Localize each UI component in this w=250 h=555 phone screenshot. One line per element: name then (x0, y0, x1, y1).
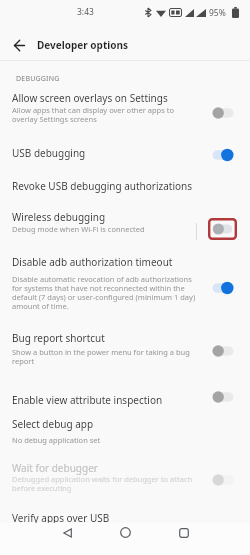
button[interactable] (0, 450, 250, 498)
button[interactable] (0, 136, 250, 170)
button[interactable] (6, 32, 32, 58)
staticText: USB debugging (12, 146, 86, 160)
button[interactable] (0, 500, 250, 523)
button[interactable] (0, 86, 250, 134)
staticText: 3:43 (77, 6, 94, 18)
staticText: DEBUGGING (16, 74, 60, 84)
staticText: Check apps installed via ADB/ADT for har… (12, 526, 173, 545)
button[interactable] (0, 201, 250, 248)
staticText: Allow apps that can display over other a… (12, 105, 174, 124)
button[interactable] (0, 410, 250, 448)
staticText: Disable adb authorization timeout (12, 255, 173, 269)
staticText: Debugged application waits for debugger … (12, 474, 193, 493)
staticText: No debug application set (12, 435, 101, 445)
button[interactable] (0, 320, 250, 370)
button[interactable] (0, 376, 250, 416)
staticText: Verify apps over USB (12, 511, 110, 525)
staticText: Wait for debugger (12, 461, 98, 475)
staticText: Enable view attribute inspection (12, 393, 163, 407)
staticText: Select debug app (12, 417, 94, 431)
staticText: Wireless debugging (12, 210, 106, 224)
button[interactable] (0, 248, 250, 314)
staticText: Revoke USB debugging authorizations (12, 179, 193, 193)
staticText: Bug report shortcut (12, 331, 105, 345)
staticText: Debug mode when Wi-Fi is connected (12, 224, 145, 234)
button[interactable] (55, 523, 79, 542)
staticText: Allow screen overlays on Settings (12, 91, 168, 105)
button[interactable] (113, 523, 137, 542)
staticText: Disable automatic revocation of adb auth… (12, 274, 196, 311)
staticText: 95% (209, 7, 226, 19)
staticText: Developer options (37, 38, 129, 52)
button[interactable] (0, 170, 250, 201)
staticText: Show a button in the power menu for taki… (12, 347, 190, 366)
button[interactable] (172, 523, 196, 542)
